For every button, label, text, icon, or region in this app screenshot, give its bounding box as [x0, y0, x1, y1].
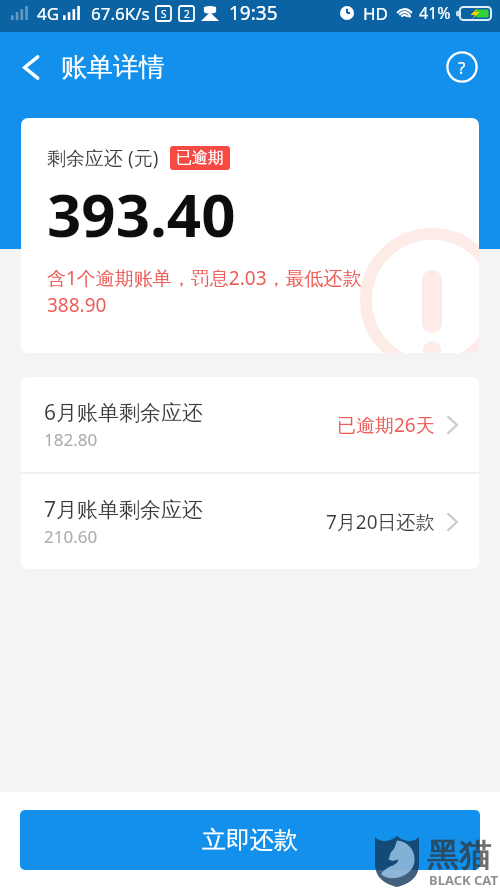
staticText: 2: [184, 7, 190, 21]
button[interactable]: 6月账单剩余应还: [21, 377, 479, 472]
button[interactable]: 7月账单剩余应还: [21, 474, 479, 569]
button[interactable]: Back: [7, 43, 55, 91]
button[interactable]: Help: [441, 46, 483, 88]
staticText: 已逾期26天: [337, 412, 435, 438]
staticText: 账单详情: [61, 51, 165, 84]
staticText: S: [161, 7, 167, 21]
staticText: BLACK CAT: [429, 871, 498, 889]
staticText: 立即还款: [202, 825, 298, 855]
staticText: 7月账单剩余应还: [44, 495, 204, 524]
staticText: 4G: [37, 2, 60, 25]
staticText: 已逾期: [176, 148, 224, 168]
staticText: 182.80: [44, 428, 98, 451]
staticText: 含1个逾期账单，罚息2.03，最低还款 388.90: [47, 265, 362, 318]
staticText: 7月20日还款: [326, 509, 435, 535]
staticText: 剩余应还 (元): [47, 145, 159, 171]
staticText: ?: [458, 56, 466, 79]
staticText: 210.60: [44, 525, 98, 548]
staticText: 41%: [419, 2, 451, 24]
staticText: 19:35: [229, 0, 278, 26]
staticText: 黑猫: [427, 835, 491, 875]
button[interactable]: 立即还款: [20, 810, 480, 870]
staticText: 67.6K/s: [91, 2, 150, 25]
staticText: HD: [363, 2, 389, 25]
staticText: 6月账单剩余应还: [44, 398, 204, 427]
staticText: 393.40: [47, 173, 236, 255]
